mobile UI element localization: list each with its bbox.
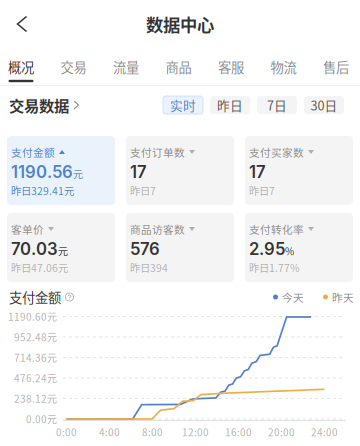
staticText: 交易数据 bbox=[9, 94, 69, 116]
staticText: 元 bbox=[73, 167, 83, 181]
button[interactable]: 交易数据 bbox=[0, 90, 87, 120]
button[interactable]: Back bbox=[0, 2, 44, 46]
staticText: % bbox=[285, 244, 294, 258]
staticText: 70.03 bbox=[11, 239, 58, 259]
button[interactable]: 实时 bbox=[163, 96, 203, 114]
staticText: 1190.60元 bbox=[8, 309, 57, 324]
staticText: 昨日 bbox=[217, 96, 243, 114]
button[interactable]: 支付买家数 bbox=[245, 136, 353, 205]
staticText: 交易 bbox=[60, 57, 86, 76]
button[interactable]: 7日 bbox=[257, 96, 297, 114]
staticText: 今天 bbox=[282, 289, 304, 305]
staticText: 昨日1.77% bbox=[249, 260, 300, 275]
staticText: 昨日47.06元 bbox=[11, 260, 68, 275]
staticText: 支付金额 bbox=[9, 287, 61, 307]
staticText: 0:00 bbox=[56, 425, 77, 439]
staticText: 支付买家数 bbox=[249, 144, 304, 160]
button[interactable]: 流量 bbox=[103, 53, 148, 83]
staticText: 7日 bbox=[267, 96, 287, 114]
button[interactable]: 支付金额 bbox=[7, 136, 115, 205]
staticText: 8:00 bbox=[142, 425, 163, 439]
staticText: 12:00 bbox=[182, 425, 209, 439]
button[interactable]: 支付转化率 bbox=[245, 213, 353, 282]
staticText: 支付转化率 bbox=[249, 221, 304, 237]
staticText: 952.48元 bbox=[14, 330, 57, 344]
button[interactable]: 客服 bbox=[208, 53, 253, 83]
staticText: 元 bbox=[58, 244, 68, 258]
staticText: 数据中心 bbox=[146, 11, 214, 37]
staticText: 支付订单数 bbox=[130, 144, 185, 160]
staticText: 20:00 bbox=[268, 425, 295, 439]
staticText: 物流 bbox=[270, 57, 296, 76]
staticText: 支付金额 bbox=[11, 144, 55, 160]
staticText: 实时 bbox=[170, 96, 196, 114]
button[interactable]: 物流 bbox=[261, 53, 306, 83]
staticText: 昨日7 bbox=[130, 183, 156, 198]
staticText: 17 bbox=[130, 162, 147, 182]
staticText: 昨日7 bbox=[249, 183, 275, 198]
button[interactable]: 交易 bbox=[51, 53, 96, 83]
staticText: 商品访客数 bbox=[130, 221, 185, 237]
button[interactable]: 商品 bbox=[156, 53, 201, 83]
staticText: 17 bbox=[249, 162, 266, 182]
button[interactable]: 支付金额 bbox=[9, 288, 74, 306]
button[interactable]: 售后 bbox=[313, 53, 358, 83]
staticText: 昨日329.41元 bbox=[11, 183, 74, 198]
staticText: 1190.56 bbox=[11, 162, 73, 182]
staticText: 流量 bbox=[113, 57, 139, 76]
staticText: 4:00 bbox=[99, 425, 120, 439]
staticText: 概况 bbox=[8, 57, 34, 76]
staticText: 30日 bbox=[310, 96, 337, 114]
staticText: 2.95 bbox=[249, 239, 285, 259]
staticText: 售后 bbox=[323, 57, 349, 76]
staticText: 0.00元 bbox=[26, 412, 57, 426]
staticText: 16:00 bbox=[225, 425, 252, 439]
button[interactable]: 概况 bbox=[0, 53, 43, 83]
staticText: 客服 bbox=[218, 57, 244, 76]
staticText: 商品 bbox=[165, 57, 191, 76]
staticText: 714.36元 bbox=[14, 350, 57, 365]
button[interactable]: 30日 bbox=[304, 96, 344, 114]
staticText: 24:00 bbox=[311, 425, 338, 439]
staticText: 238.12元 bbox=[14, 391, 57, 406]
staticText: 昨天 bbox=[332, 289, 354, 305]
staticText: 476.24元 bbox=[14, 371, 57, 385]
button[interactable]: 昨日 bbox=[210, 96, 250, 114]
staticText: 576 bbox=[130, 239, 160, 259]
staticText: 客单价 bbox=[11, 221, 44, 237]
button[interactable]: 支付订单数 bbox=[126, 136, 234, 205]
staticText: 昨日394 bbox=[130, 260, 168, 275]
button[interactable]: 商品访客数 bbox=[126, 213, 234, 282]
button[interactable]: 客单价 bbox=[7, 213, 115, 282]
